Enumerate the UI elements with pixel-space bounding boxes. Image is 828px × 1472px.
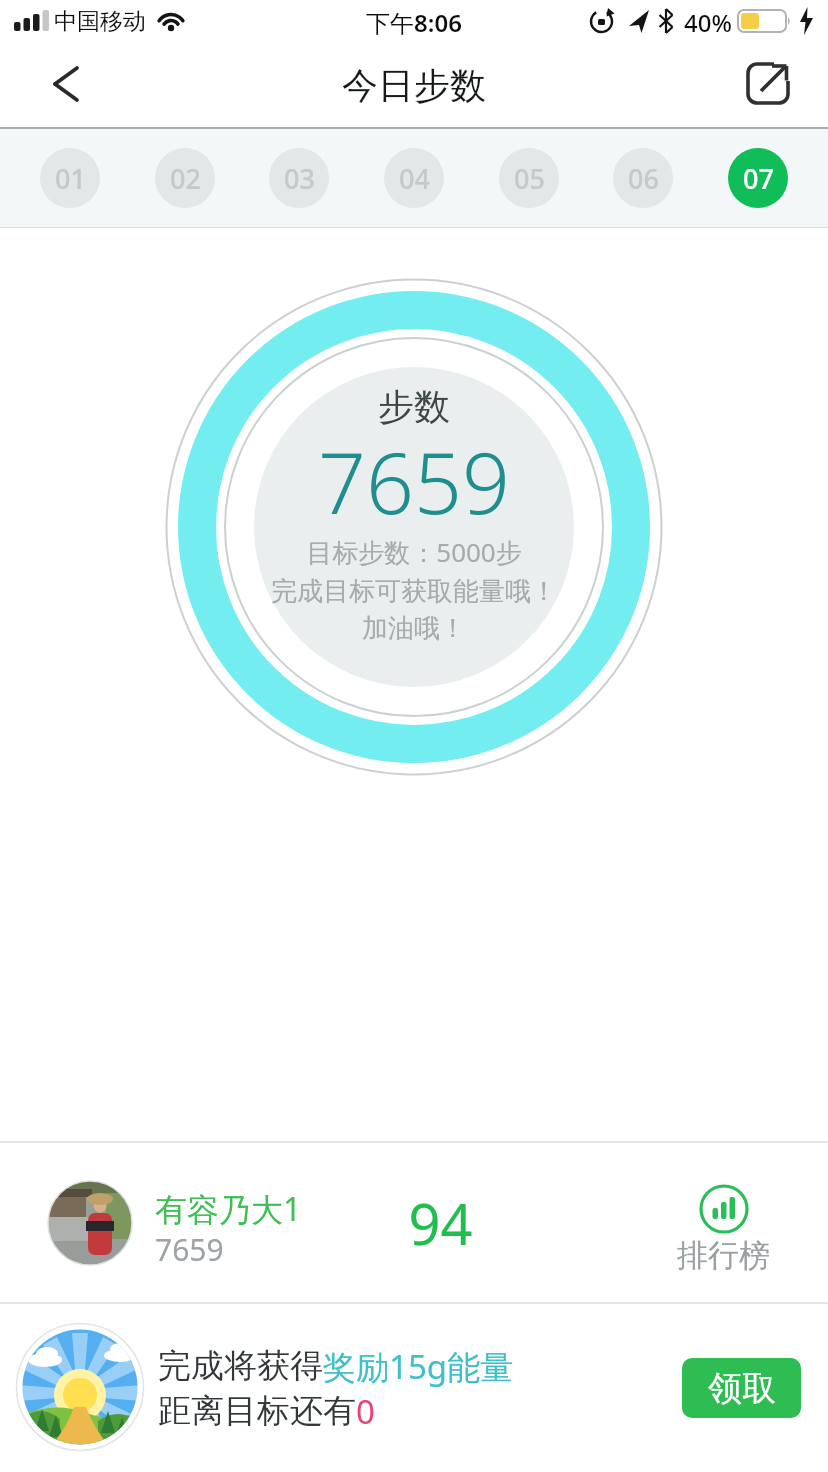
- button[interactable]: 05: [499, 148, 559, 208]
- button[interactable]: 完成将获得: [0, 1304, 828, 1472]
- staticText: 01: [55, 160, 86, 197]
- button[interactable]: 06: [613, 148, 673, 208]
- staticText: 06: [628, 160, 659, 197]
- button[interactable]: 领取: [682, 1358, 801, 1418]
- staticText: 有容乃大1: [155, 1187, 302, 1227]
- staticText: 完成将获得: [158, 1345, 323, 1387]
- button[interactable]: 07: [728, 148, 788, 208]
- staticText: 7659: [155, 1229, 224, 1269]
- staticText: 步数: [378, 384, 450, 429]
- staticText: 94: [408, 1185, 473, 1261]
- button[interactable]: 02: [155, 148, 215, 208]
- button[interactable]: [698, 1183, 750, 1235]
- staticText: 领取: [708, 1367, 776, 1410]
- staticText: 40%: [684, 6, 732, 36]
- staticText: 0: [356, 1389, 375, 1433]
- staticText: 02: [170, 160, 201, 197]
- staticText: 排行榜: [677, 1236, 770, 1275]
- button[interactable]: [36, 56, 88, 112]
- staticText: 今日步数: [342, 63, 486, 108]
- staticText: 下午8:06: [366, 6, 462, 36]
- button[interactable]: 03: [269, 148, 329, 208]
- button[interactable]: 有容乃大1: [0, 1143, 828, 1302]
- staticText: 05: [514, 160, 545, 197]
- staticText: 完成目标可获取能量哦！: [271, 575, 557, 608]
- staticText: 加油哦！: [362, 612, 466, 645]
- staticText: 中国移动: [54, 7, 146, 36]
- staticText: 目标步数：5000步: [306, 534, 522, 570]
- staticText: 07: [743, 160, 774, 197]
- staticText: 03: [284, 160, 315, 197]
- staticText: 7659: [318, 424, 510, 536]
- staticText: 04: [399, 160, 430, 197]
- staticText: 距离目标还有: [158, 1390, 356, 1432]
- button[interactable]: 04: [384, 148, 444, 208]
- button[interactable]: 01: [40, 148, 100, 208]
- staticText: 奖励15g能量: [323, 1344, 514, 1388]
- button[interactable]: [736, 52, 800, 116]
